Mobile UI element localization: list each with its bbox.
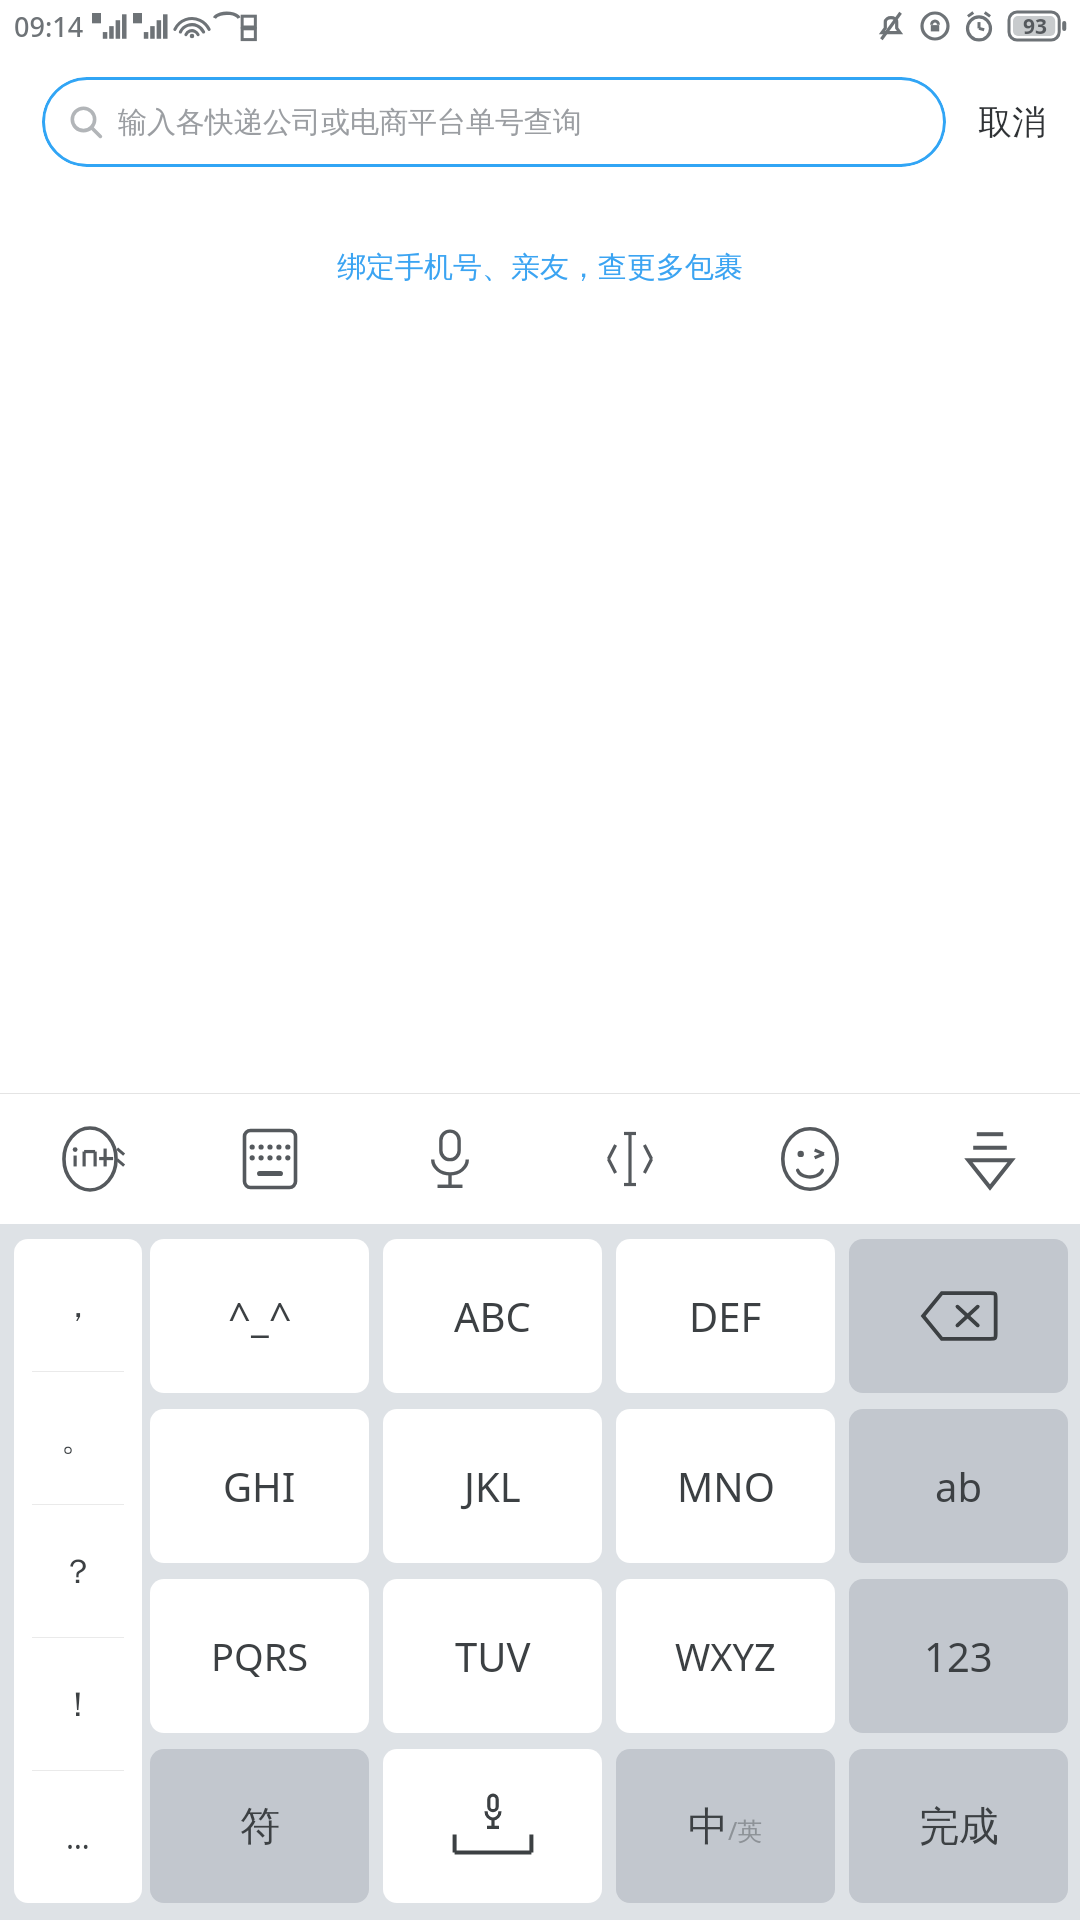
- button[interactable]: Voice input: [360, 1094, 540, 1224]
- staticText: 完成: [919, 1801, 999, 1851]
- staticText: ^_^: [228, 1289, 292, 1343]
- button[interactable]: DEF: [616, 1239, 835, 1393]
- button[interactable]: 。: [14, 1372, 142, 1504]
- staticText: ABC: [454, 1289, 531, 1343]
- button[interactable]: Space: [383, 1749, 602, 1903]
- button[interactable]: 123: [849, 1579, 1068, 1733]
- staticText: DEF: [689, 1289, 762, 1343]
- button[interactable]: WXYZ: [616, 1579, 835, 1733]
- button[interactable]: 中: [616, 1749, 835, 1903]
- button[interactable]: Delete: [849, 1239, 1068, 1393]
- button[interactable]: Edit cursor: [540, 1094, 720, 1224]
- staticText: PQRS: [211, 1630, 309, 1682]
- button[interactable]: Hide keyboard: [900, 1094, 1080, 1224]
- button[interactable]: 绑定手机号、亲友，查更多包裹: [337, 249, 743, 286]
- staticText: 。: [61, 1417, 95, 1460]
- staticText: 123: [924, 1629, 993, 1683]
- staticText: JKL: [464, 1459, 521, 1513]
- staticText: …: [66, 1817, 90, 1858]
- button[interactable]: ABC: [383, 1239, 602, 1393]
- staticText: WXYZ: [675, 1630, 776, 1682]
- button[interactable]: 完成: [849, 1749, 1068, 1903]
- staticText: TUV: [455, 1629, 531, 1683]
- staticText: ab: [935, 1459, 983, 1513]
- button[interactable]: Keyboard layout: [180, 1094, 360, 1224]
- staticText: ！: [61, 1683, 95, 1726]
- button[interactable]: Emoji: [720, 1094, 900, 1224]
- staticText: MNO: [677, 1459, 775, 1513]
- staticText: 符: [240, 1801, 280, 1851]
- button[interactable]: GHI: [150, 1409, 369, 1563]
- staticText: 取消: [978, 101, 1046, 144]
- button[interactable]: TUV: [383, 1579, 602, 1733]
- button[interactable]: ，: [14, 1239, 142, 1371]
- staticText: 09:14: [14, 8, 84, 45]
- staticText: 输入各快递公司或电商平台单号查询: [118, 104, 582, 141]
- button[interactable]: 取消: [970, 89, 1054, 156]
- button[interactable]: ^_^: [150, 1239, 369, 1393]
- button[interactable]: JKL: [383, 1409, 602, 1563]
- button[interactable]: MNO: [616, 1409, 835, 1563]
- button[interactable]: ？: [14, 1505, 142, 1637]
- staticText: ，: [61, 1284, 95, 1327]
- staticText: /英: [728, 1813, 763, 1847]
- button[interactable]: 输入各快递公司或电商平台单号查询: [42, 77, 946, 167]
- button[interactable]: PQRS: [150, 1579, 369, 1733]
- button[interactable]: ！: [14, 1638, 142, 1770]
- staticText: 93: [1023, 12, 1048, 41]
- staticText: 中: [688, 1801, 728, 1851]
- button[interactable]: 符: [150, 1749, 369, 1903]
- button[interactable]: ab: [849, 1409, 1068, 1563]
- staticText: ？: [61, 1550, 95, 1593]
- button[interactable]: …: [14, 1771, 142, 1903]
- button[interactable]: Input method: [0, 1094, 180, 1224]
- staticText: GHI: [223, 1459, 296, 1513]
